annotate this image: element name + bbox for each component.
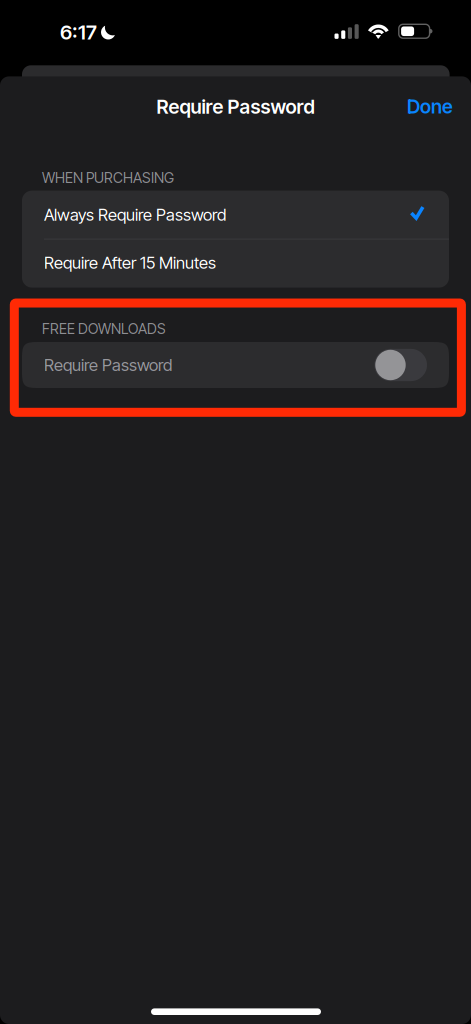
staticText: WHEN PURCHASING xyxy=(42,169,174,186)
button[interactable]: Require After 15 Minutes xyxy=(22,239,449,287)
staticText: Require Password xyxy=(156,95,314,119)
staticText: Done xyxy=(407,95,453,118)
button[interactable]: Done xyxy=(393,85,467,128)
staticText: Always Require Password xyxy=(44,204,226,225)
staticText: 6:17 xyxy=(60,20,97,44)
button[interactable]: Always Require Password xyxy=(22,191,449,239)
staticText: Require After 15 Minutes xyxy=(44,252,216,273)
button[interactable]: Require Password xyxy=(22,342,449,388)
staticText: Require Password xyxy=(44,355,172,375)
staticText: FREE DOWNLOADS xyxy=(42,320,166,337)
